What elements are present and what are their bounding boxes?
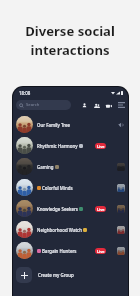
button[interactable]: Colorful Minds — [13, 177, 128, 198]
button[interactable]: Bargain Hunters — [13, 240, 128, 261]
staticText: Live — [97, 249, 105, 254]
button[interactable]: Contacts — [80, 101, 89, 110]
staticText: Gaming — [37, 164, 54, 170]
staticText: Live — [97, 144, 105, 149]
button[interactable]: Knowledge Seekers — [13, 198, 128, 219]
button[interactable]: Our Family Tree — [13, 114, 128, 135]
staticText: Neighborhood Watch — [37, 227, 82, 233]
button[interactable]: Neighborhood Watch — [13, 219, 128, 240]
button[interactable]: Mute — [116, 120, 125, 129]
button[interactable]: Gaming — [13, 156, 128, 177]
button[interactable]: Rhythmic Harmony — [13, 135, 128, 156]
button[interactable]: Menu — [116, 100, 126, 110]
button[interactable]: Search — [16, 100, 71, 110]
staticText: Rhythmic Harmony — [37, 143, 78, 149]
button[interactable]: Groups — [92, 101, 101, 110]
staticText: 18:08 — [19, 90, 31, 96]
staticText: Colorful Minds — [42, 185, 73, 191]
staticText: Create my Group — [38, 272, 74, 278]
staticText: Search — [26, 102, 40, 108]
staticText: Our Family Tree — [37, 122, 71, 128]
staticText: Live — [97, 207, 105, 212]
staticText: Knowledge Seekers — [37, 206, 78, 212]
button[interactable]: Create my Group — [13, 265, 128, 285]
staticText: Diverse social interactions — [0, 22, 140, 59]
button[interactable]: Video call — [104, 101, 113, 110]
staticText: Bargain Hunters — [42, 248, 77, 254]
